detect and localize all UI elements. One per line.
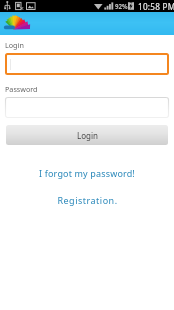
button[interactable]: Registration. bbox=[0, 192, 174, 208]
staticText: 10:58 PM bbox=[138, 1, 174, 12]
staticText: 92% bbox=[115, 2, 128, 10]
button[interactable]: I forgot my password! bbox=[0, 165, 174, 181]
button[interactable] bbox=[5, 97, 169, 118]
staticText: Login bbox=[5, 40, 24, 50]
button[interactable]: Login bbox=[6, 125, 168, 145]
staticText: I forgot my password! bbox=[39, 167, 135, 179]
button[interactable] bbox=[5, 53, 169, 75]
staticText: Password bbox=[5, 84, 38, 94]
staticText: Registration. bbox=[57, 194, 118, 206]
other: App logo bbox=[0, 12, 34, 35]
staticText: Login bbox=[77, 130, 98, 141]
